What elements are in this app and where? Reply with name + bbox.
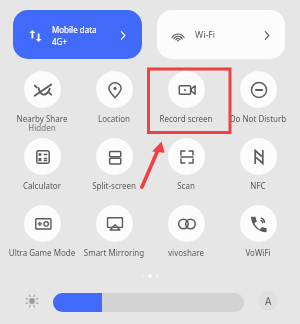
button[interactable]: Ultra Game Mode <box>6 205 78 267</box>
button[interactable]: Location <box>78 71 150 133</box>
staticText: A <box>265 294 272 308</box>
button[interactable]: vivoshare <box>150 205 222 267</box>
staticText: VoWiFi <box>222 247 294 258</box>
button[interactable]: Record screen <box>150 71 222 133</box>
staticText: Hidden <box>6 122 78 133</box>
button[interactable] <box>53 293 244 312</box>
staticText: 4G+ <box>52 36 67 47</box>
button[interactable]: A <box>258 291 278 311</box>
staticText: Calculator <box>6 180 78 191</box>
staticText: Location <box>78 113 150 124</box>
button[interactable]: Split-screen <box>78 138 150 200</box>
staticText: Do Not Disturb <box>222 113 294 124</box>
staticText: Smart Mirroring <box>78 247 150 258</box>
button[interactable]: Calculator <box>6 138 78 200</box>
button[interactable]: NFC <box>222 138 294 200</box>
staticText: vivoshare <box>150 247 222 258</box>
button[interactable]: Smart Mirroring <box>78 205 150 267</box>
staticText: Split-screen <box>78 180 150 191</box>
button[interactable]: Wi-Fi <box>157 10 285 59</box>
button[interactable]: VoWiFi <box>222 205 294 267</box>
staticText: Ultra Game Mode <box>6 247 78 258</box>
button[interactable]: Nearby Share <box>6 71 78 133</box>
staticText: Scan <box>150 180 222 191</box>
staticText: Wi-Fi <box>195 29 216 41</box>
button[interactable]: Do Not Disturb <box>222 71 294 133</box>
staticText: Mobile data <box>52 24 97 35</box>
staticText: NFC <box>222 180 294 191</box>
staticText: Record screen <box>150 113 222 124</box>
staticText: Nearby Share <box>6 113 78 124</box>
button[interactable]: Mobile data <box>13 10 142 59</box>
other: Brightness <box>25 294 39 308</box>
button[interactable]: Scan <box>150 138 222 200</box>
